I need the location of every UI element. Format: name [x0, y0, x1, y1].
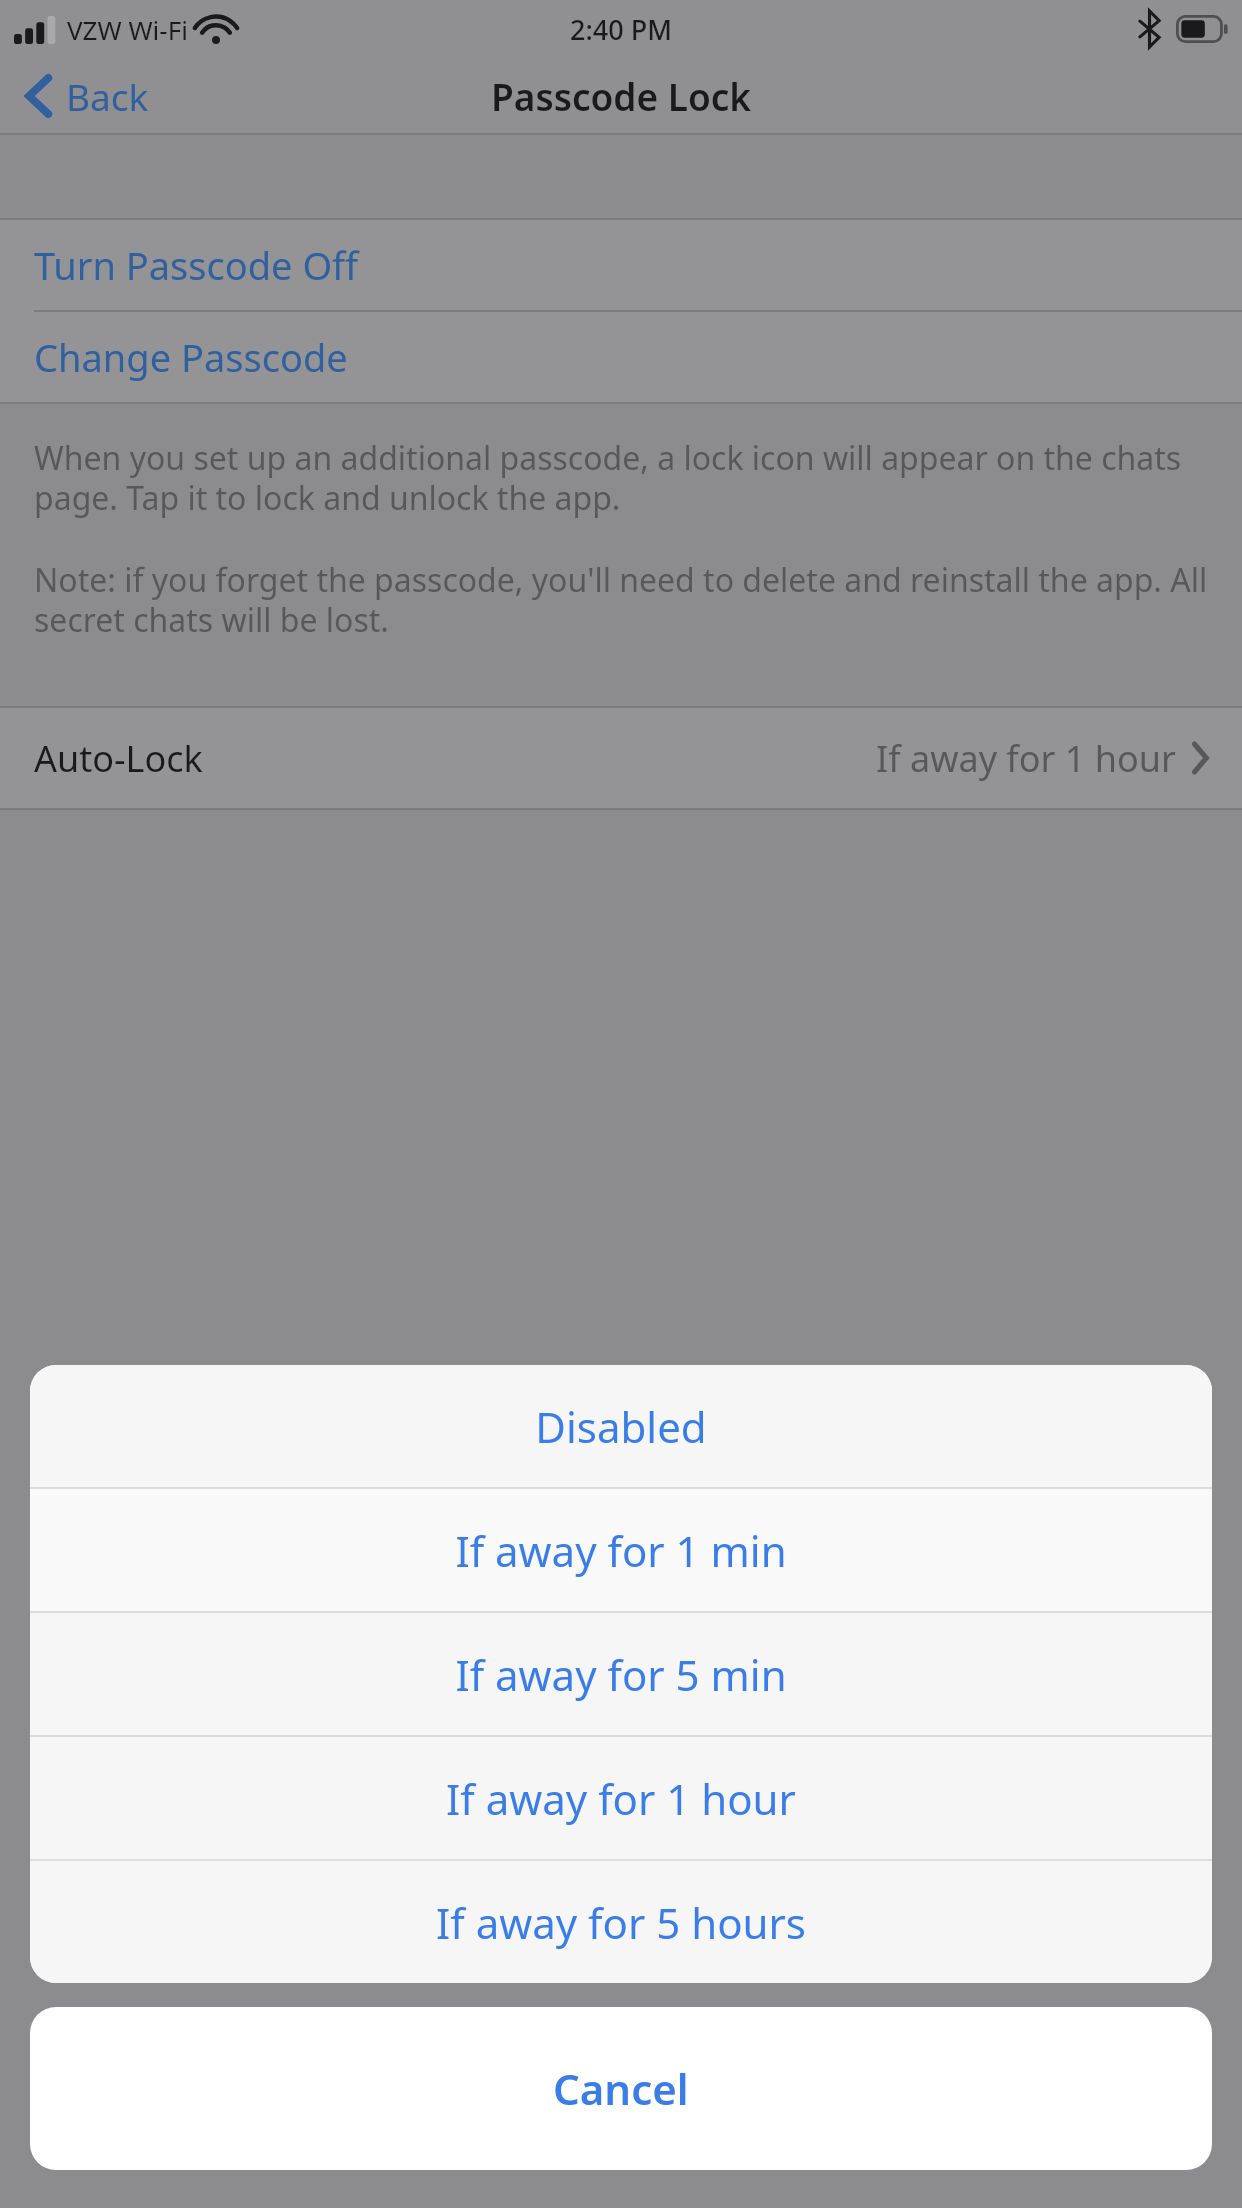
staticText: Turn Passcode Off [34, 239, 359, 291]
staticText: Passcode Lock [491, 71, 752, 121]
staticText: Cancel [553, 2060, 689, 2117]
button[interactable]: If away for 5 min [30, 1613, 1212, 1735]
button[interactable]: If away for 1 hour [30, 1737, 1212, 1859]
staticText: When you set up an additional passcode, … [34, 436, 1208, 520]
staticText: 2:40 PM [570, 11, 672, 48]
staticText: If away for 1 hour [876, 734, 1176, 783]
staticText: If away for 5 min [455, 1646, 787, 1703]
staticText: If away for 1 hour [446, 1770, 796, 1827]
button[interactable]: Change Passcode [0, 312, 1242, 402]
staticText: VZW Wi-Fi [67, 12, 188, 47]
staticText: Disabled [535, 1398, 707, 1455]
button[interactable]: If away for 5 hours [30, 1861, 1212, 1983]
button[interactable]: Back [0, 63, 169, 129]
button[interactable]: If away for 1 min [30, 1489, 1212, 1611]
button[interactable]: Turn Passcode Off [0, 220, 1242, 310]
staticText: Note: if you forget the passcode, you'll… [34, 558, 1208, 642]
staticText: If away for 1 min [455, 1522, 787, 1579]
staticText: Back [66, 71, 149, 121]
staticText: If away for 5 hours [436, 1894, 806, 1951]
staticText: Change Passcode [34, 331, 348, 383]
button[interactable]: Disabled [30, 1365, 1212, 1487]
button[interactable]: Auto-Lock [0, 708, 1242, 808]
staticText: Auto-Lock [34, 734, 203, 783]
button[interactable]: Cancel [30, 2007, 1212, 2170]
